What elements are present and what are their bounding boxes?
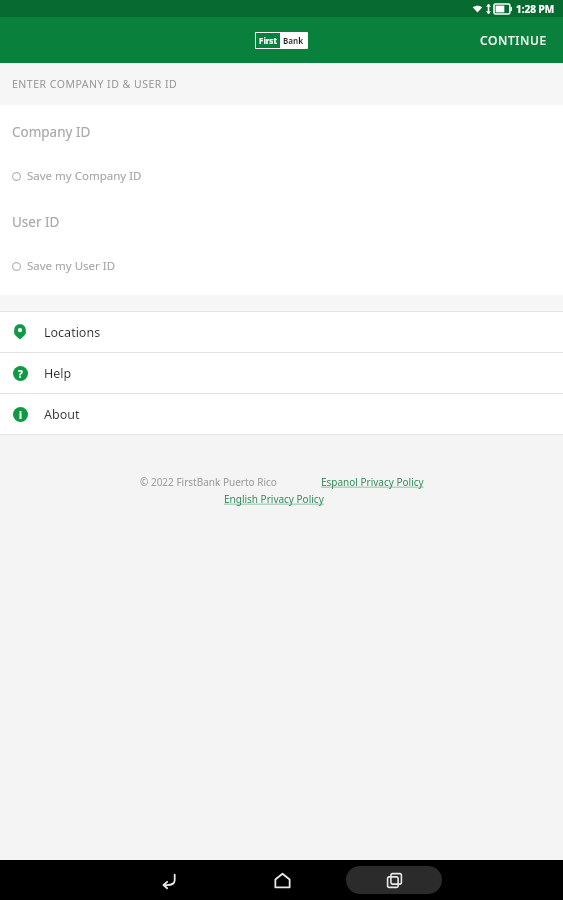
staticText: English Privacy Policy [224, 492, 324, 506]
staticText: 1:28 PM [516, 2, 555, 16]
staticText: ENTER COMPANY ID & USER ID [12, 77, 178, 91]
staticText: Company ID [12, 123, 91, 141]
staticText: First [259, 35, 277, 46]
staticText: CONTINUE [480, 32, 547, 48]
button[interactable]: Home [226, 860, 338, 900]
button[interactable]: Save my Company ID [0, 165, 563, 187]
staticText: Locations [44, 324, 101, 341]
button[interactable]: Back [114, 860, 226, 900]
button[interactable]: CONTINUE [464, 22, 563, 58]
staticText: Save my Company ID [27, 168, 142, 184]
button[interactable]: Espanol Privacy Policy [321, 475, 424, 489]
staticText: Espanol Privacy Policy [321, 475, 424, 489]
button[interactable]: English Privacy Policy [224, 492, 324, 506]
staticText: i [19, 408, 22, 422]
button[interactable]: FirstBank logo [256, 33, 307, 48]
button[interactable]: Save my User ID [0, 255, 563, 277]
staticText: About [44, 406, 80, 423]
button[interactable]: i [0, 394, 563, 434]
staticText: © 2022 FirstBank Puerto Rico [140, 475, 277, 489]
staticText: ? [18, 367, 23, 381]
button[interactable]: Locations [0, 312, 563, 352]
button[interactable]: ? [0, 353, 563, 393]
button[interactable]: Company ID [0, 119, 563, 145]
button[interactable]: User ID [0, 209, 563, 235]
staticText: Save my User ID [27, 258, 116, 274]
button[interactable]: Recent apps [338, 860, 450, 900]
staticText: Help [44, 365, 72, 382]
staticText: Bank [283, 35, 304, 46]
staticText: User ID [12, 213, 60, 231]
